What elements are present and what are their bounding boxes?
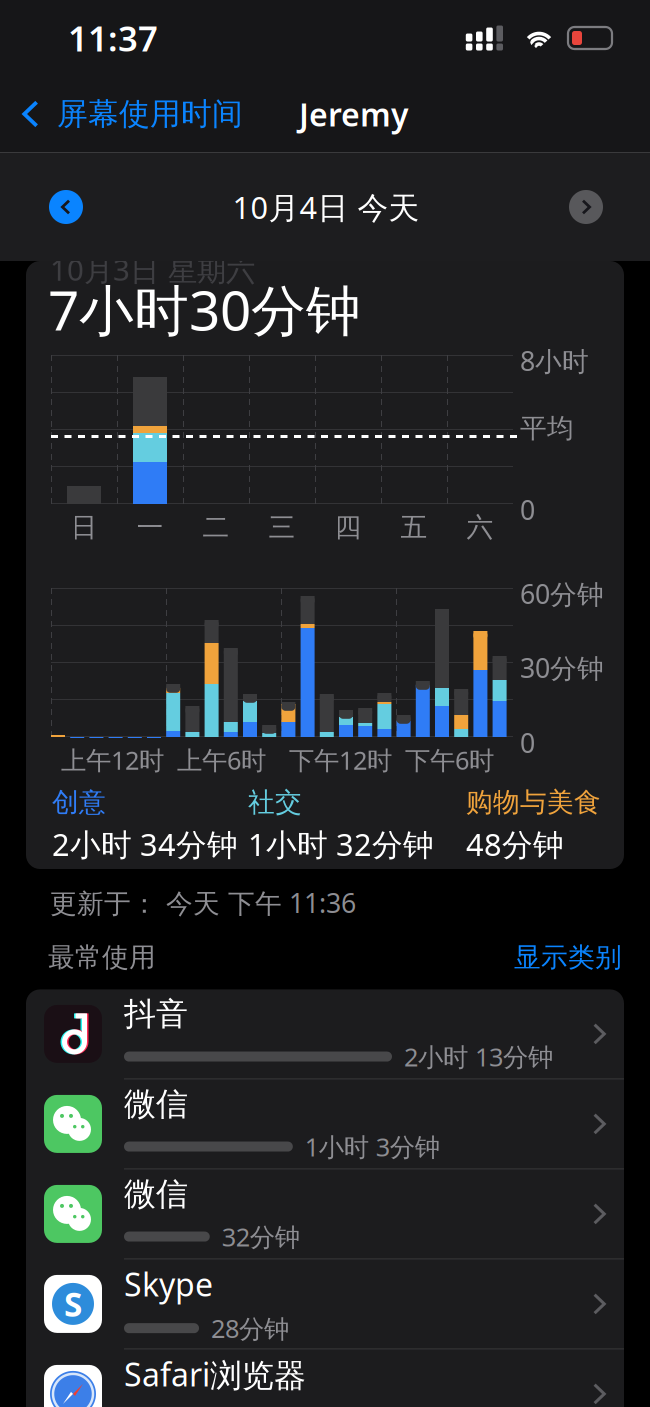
- staticText: 0: [520, 725, 535, 760]
- staticText: 社交: [248, 786, 302, 819]
- staticText: 日: [70, 511, 97, 544]
- staticText: 二: [202, 511, 229, 544]
- button[interactable]: 抖音: [26, 989, 624, 1078]
- staticText: 五: [400, 511, 427, 544]
- staticText: 上午12时: [61, 743, 164, 777]
- staticText: 下午12时: [289, 743, 392, 777]
- button[interactable]: 后一天: [554, 175, 618, 239]
- staticText: 购物与美食: [466, 786, 601, 819]
- staticText: 最常使用: [48, 941, 156, 974]
- staticText: 六: [466, 511, 493, 544]
- staticText: 0: [520, 492, 535, 527]
- staticText: 10月4日 今天: [232, 187, 419, 227]
- staticText: 60分钟: [520, 576, 604, 611]
- staticText: Jeremy: [299, 93, 409, 135]
- staticText: 更新于： 今天 下午 11:36: [50, 885, 356, 920]
- staticText: 28分钟: [211, 1311, 289, 1345]
- staticText: 10月3日 星期六: [50, 250, 255, 289]
- staticText: 32分钟: [222, 1220, 300, 1253]
- staticText: 48分钟: [466, 824, 564, 864]
- staticText: 微信: [124, 1084, 188, 1124]
- staticText: 屏幕使用时间: [57, 95, 243, 133]
- staticText: 显示类别: [514, 941, 622, 974]
- staticText: Safari浏览器: [124, 1353, 306, 1395]
- button[interactable]: 前一天: [34, 175, 98, 239]
- staticText: 1小时 32分钟: [248, 824, 434, 864]
- staticText: 8小时: [520, 343, 589, 378]
- staticText: 7小时30分钟: [48, 273, 361, 346]
- staticText: 2小时 13分钟: [404, 1040, 553, 1073]
- staticText: Skype: [124, 1263, 213, 1305]
- staticText: 下午6时: [405, 743, 494, 777]
- button[interactable]: 微信: [26, 1169, 624, 1258]
- staticText: 2小时 34分钟: [52, 824, 238, 864]
- button[interactable]: 屏幕使用时间: [0, 76, 255, 152]
- staticText: 上午6时: [177, 743, 266, 777]
- staticText: 三: [268, 511, 295, 544]
- button[interactable]: Safari浏览器: [26, 1349, 624, 1407]
- button[interactable]: S: [26, 1259, 624, 1348]
- staticText: 抖音: [124, 994, 188, 1034]
- staticText: 1小时 3分钟: [305, 1130, 440, 1163]
- button[interactable]: 显示类别: [514, 941, 622, 974]
- staticText: 30分钟: [520, 650, 604, 685]
- button[interactable]: 微信: [26, 1079, 624, 1168]
- staticText: 创意: [52, 786, 106, 819]
- staticText: 11:37: [68, 15, 158, 61]
- staticText: 微信: [124, 1174, 188, 1214]
- staticText: 平均: [520, 412, 574, 445]
- staticText: 四: [334, 511, 361, 544]
- staticText: 一: [136, 511, 163, 544]
- staticText: S: [64, 1282, 82, 1326]
